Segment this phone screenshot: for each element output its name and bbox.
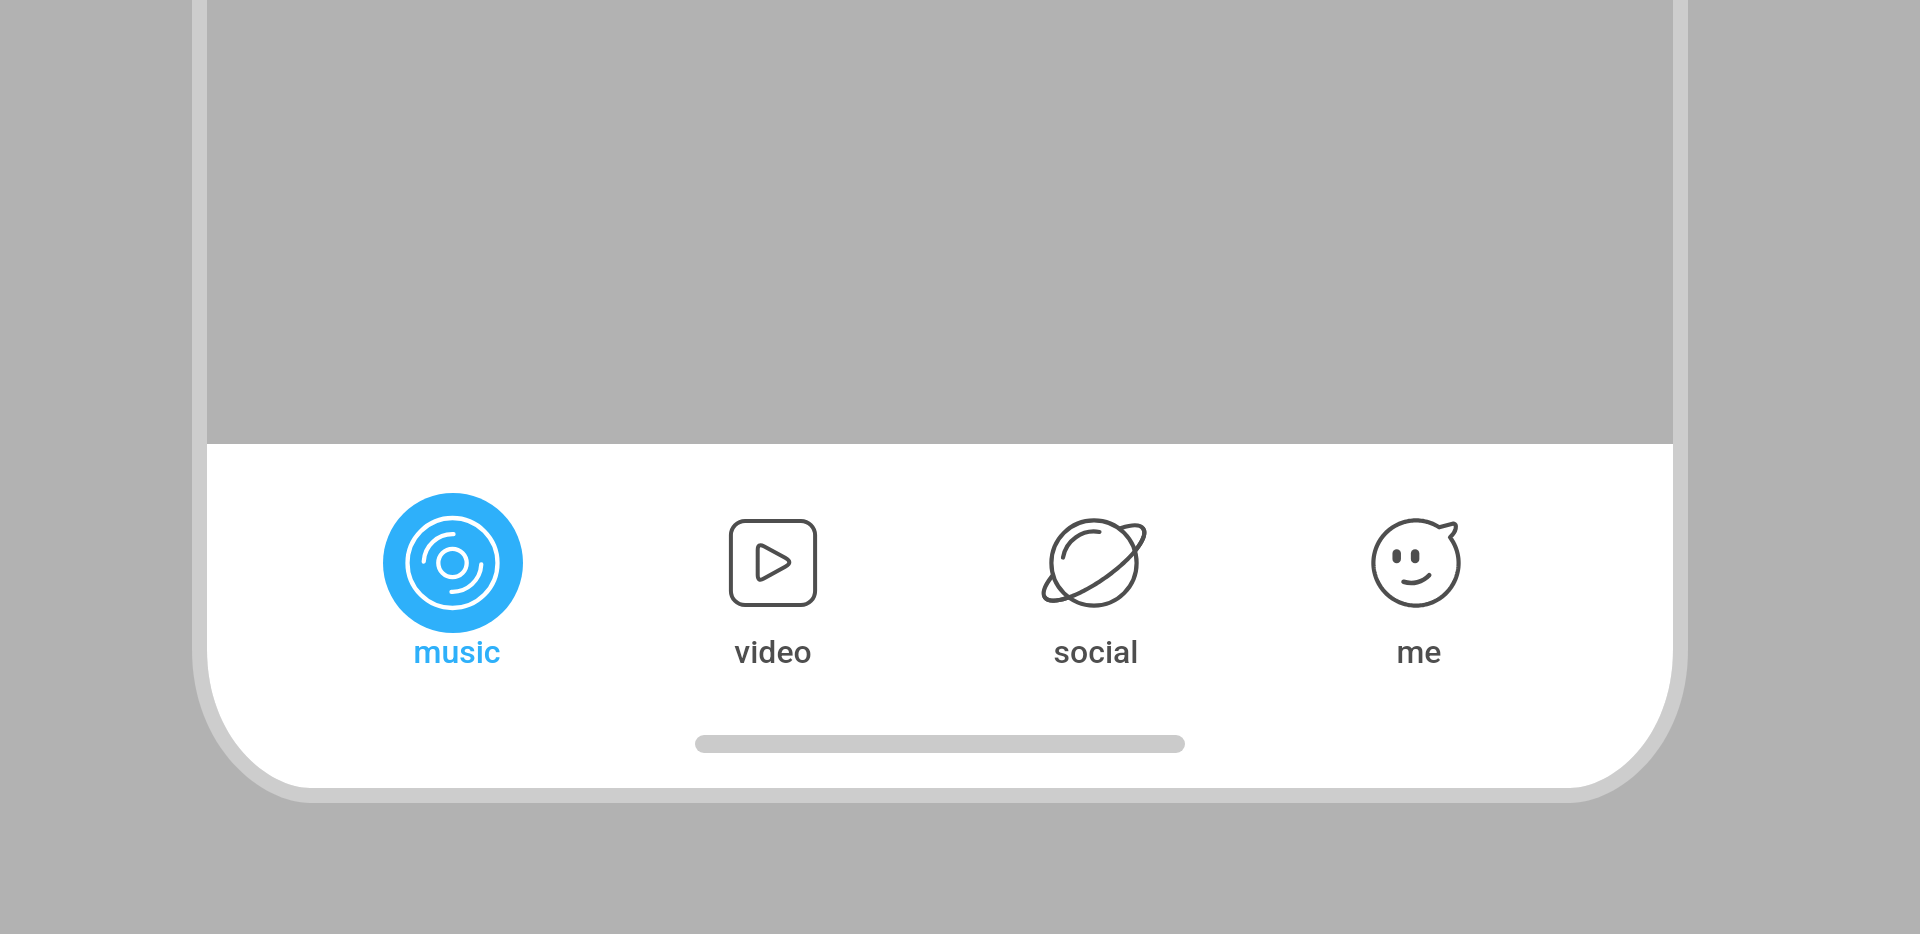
button[interactable]: Me: [1321, 475, 1511, 635]
staticText: me: [1324, 633, 1514, 671]
staticText: social: [1001, 633, 1191, 671]
button[interactable]: Video: [678, 475, 868, 635]
staticText: music: [362, 633, 552, 671]
button[interactable]: Music: [358, 475, 548, 635]
staticText: video: [678, 633, 868, 671]
button[interactable]: Social: [999, 475, 1189, 635]
